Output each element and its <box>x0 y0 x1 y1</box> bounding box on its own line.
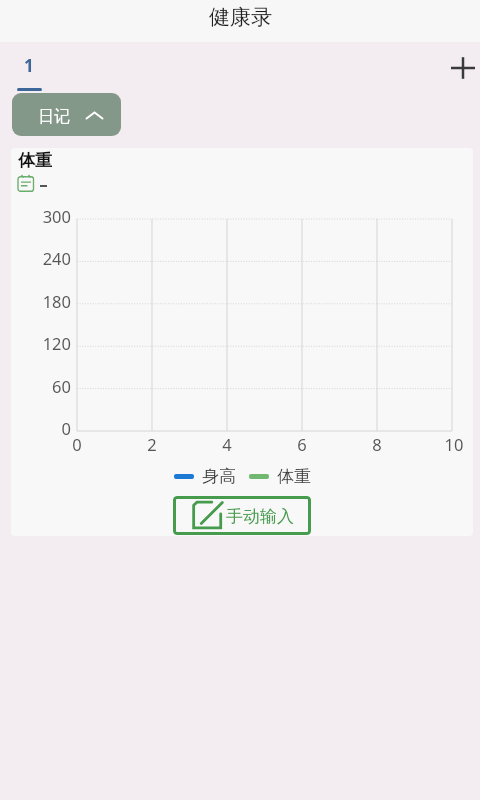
button[interactable]: 日记 <box>12 93 121 136</box>
staticText: 体重 <box>18 150 52 171</box>
staticText: 10 <box>434 433 473 455</box>
staticText: 60 <box>11 375 71 397</box>
staticText: 120 <box>11 332 71 354</box>
staticText: 身高 <box>202 466 236 487</box>
staticText: 手动输入 <box>226 506 294 527</box>
staticText: 体重 <box>277 466 311 487</box>
staticText: 8 <box>357 433 397 455</box>
staticText: 1 <box>24 54 34 77</box>
staticText: 240 <box>11 247 71 269</box>
staticText: 健康录 <box>209 4 272 30</box>
staticText: 4 <box>207 433 247 455</box>
button[interactable]: 1 <box>0 42 58 93</box>
staticText: 180 <box>11 290 71 312</box>
button[interactable]: 手动输入 <box>173 496 311 535</box>
button[interactable]: Add <box>443 48 480 88</box>
staticText: 2 <box>132 433 172 455</box>
staticText: 6 <box>282 433 322 455</box>
staticText: 300 <box>11 205 71 227</box>
staticText: 0 <box>57 433 97 455</box>
staticText: 0 <box>11 417 71 439</box>
staticText: 日记 <box>38 107 70 127</box>
